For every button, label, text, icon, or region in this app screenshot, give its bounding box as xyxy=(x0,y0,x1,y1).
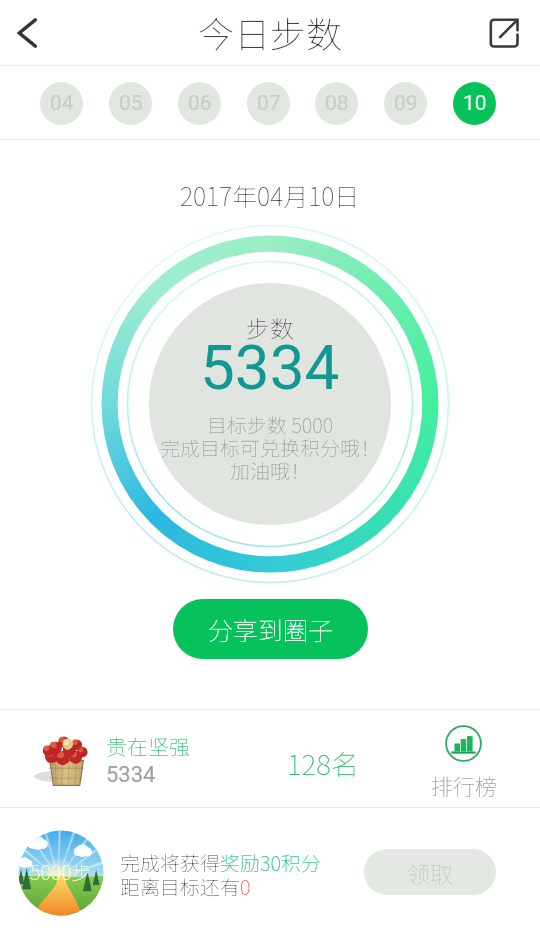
staticText: 加油哦！ xyxy=(230,456,310,485)
staticText: 05 xyxy=(119,91,143,116)
staticText: 10 xyxy=(463,91,487,116)
button[interactable]: 10 xyxy=(453,82,496,125)
staticText: 距离目标还有0 xyxy=(120,872,251,901)
staticText: 领取 xyxy=(407,856,453,889)
button[interactable]: 贵在坚强 xyxy=(0,710,540,807)
staticText: 09 xyxy=(394,91,418,116)
button[interactable]: 06 xyxy=(178,82,221,125)
staticText: 07 xyxy=(257,91,281,116)
staticText: 排行榜 xyxy=(431,769,498,801)
button[interactable]: 07 xyxy=(247,82,290,125)
staticText: 128名 xyxy=(287,743,359,784)
button[interactable]: 领取 xyxy=(364,849,496,895)
staticText: 5334 xyxy=(200,331,340,404)
staticText: 08 xyxy=(325,91,349,116)
staticText: 5000步 xyxy=(30,857,92,886)
button[interactable]: Share xyxy=(468,0,540,66)
staticText: 今日步数 xyxy=(198,6,343,58)
button[interactable]: 09 xyxy=(384,82,427,125)
staticText: 2017年04月10日 xyxy=(180,177,360,213)
staticText: 完成目标可兑换积分哦！ xyxy=(160,433,380,462)
button[interactable]: Back xyxy=(0,0,54,66)
button[interactable]: 08 xyxy=(315,82,358,125)
staticText: 分享到圈子 xyxy=(208,611,334,647)
staticText: 目标步数 5000 xyxy=(207,410,334,439)
staticText: 贵在坚强 xyxy=(106,731,190,761)
staticText: 5334 xyxy=(106,762,156,788)
staticText: 04 xyxy=(50,91,74,116)
staticText: 步数 xyxy=(246,310,294,345)
button[interactable]: 05 xyxy=(109,82,152,125)
button[interactable]: 分享到圈子 xyxy=(173,599,368,659)
staticText: 完成将获得奖励30积分 xyxy=(120,848,321,877)
button[interactable]: 04 xyxy=(40,82,83,125)
staticText: 06 xyxy=(188,91,212,116)
